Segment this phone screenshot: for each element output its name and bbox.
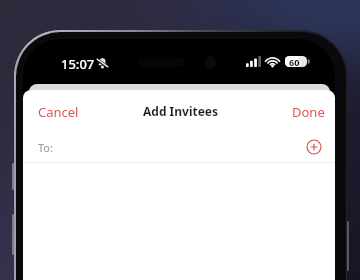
- staticText: To:: [38, 140, 53, 155]
- button[interactable]: Add invitee: [306, 139, 322, 155]
- staticText: Add Invitees: [143, 103, 219, 119]
- button[interactable]: Cancel: [23, 96, 94, 128]
- staticText: 60: [289, 56, 300, 67]
- staticText: Done: [292, 103, 325, 121]
- button[interactable]: Done: [279, 96, 335, 128]
- staticText: Cancel: [38, 103, 79, 121]
- staticText: 15:07: [61, 55, 95, 73]
